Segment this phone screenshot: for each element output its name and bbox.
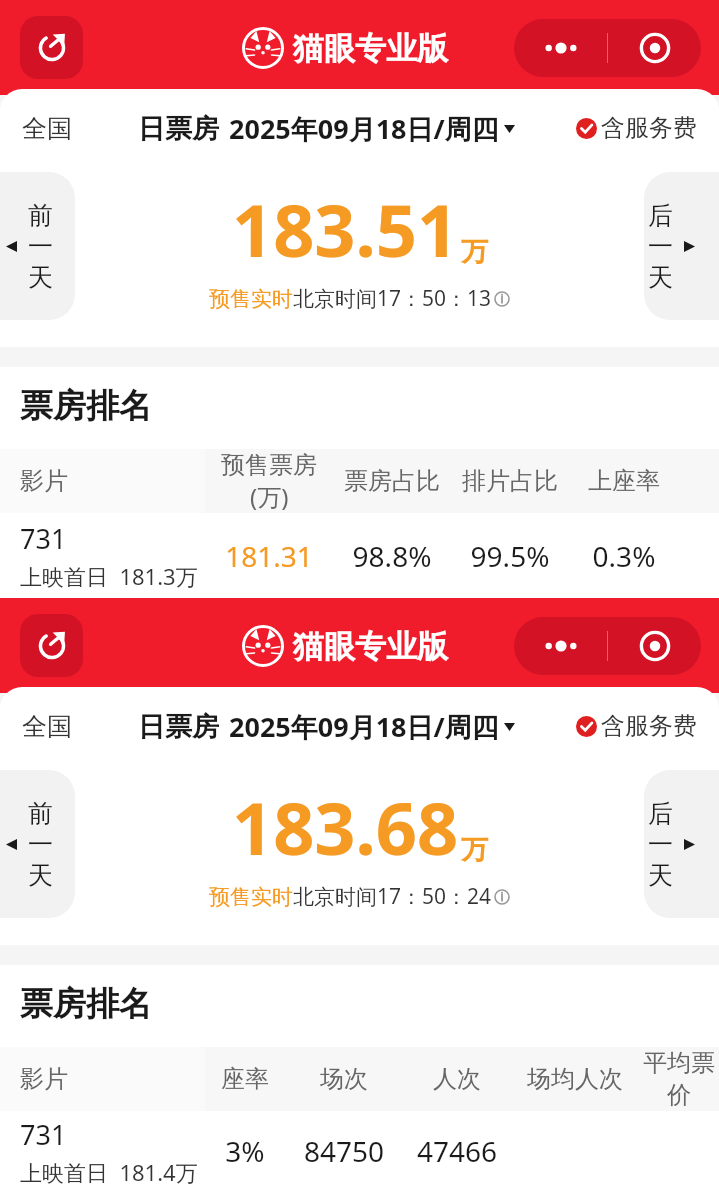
button[interactable]: 日票房 [138, 708, 515, 745]
staticText: 一 [28, 829, 53, 860]
staticText: 场次 [285, 1064, 403, 1094]
button[interactable] [644, 172, 719, 320]
staticText: 天 [648, 262, 673, 293]
staticText: 票房占比 [333, 466, 451, 496]
staticText: 731 [20, 520, 67, 557]
button[interactable]: Share [20, 614, 83, 677]
staticText: 票房排名 [20, 983, 152, 1025]
staticText: 一 [28, 231, 53, 262]
staticText: 84750 [285, 1132, 403, 1170]
staticText: 日票房 [138, 112, 219, 146]
staticText: 天 [28, 860, 53, 891]
staticText: 北京时间17：50：24 [293, 882, 492, 911]
button[interactable]: 731 [0, 513, 719, 598]
staticText: 日票房 [138, 710, 219, 744]
staticText: 47466 [403, 1132, 511, 1170]
staticText: 2025年09月18日/周四 [229, 708, 499, 745]
button[interactable]: 含服务费 [576, 113, 697, 143]
button[interactable]: 日票房 [138, 110, 515, 147]
button[interactable]: More options [514, 617, 607, 675]
button[interactable]: 含服务费 [576, 711, 697, 741]
staticText: 上映首日 181.3万 [20, 561, 198, 591]
staticText: 后 [648, 798, 673, 829]
staticText: 一 [648, 829, 673, 860]
staticText: 预售实时 [209, 884, 293, 910]
staticText: 183.68 [232, 778, 459, 876]
staticText: 3% [205, 1132, 285, 1170]
staticText: 后 [648, 200, 673, 231]
staticText: 181.31 [205, 537, 333, 575]
button[interactable] [0, 770, 75, 918]
staticText: 含服务费 [601, 711, 697, 741]
staticText: 影片 [20, 466, 68, 496]
staticText: 天 [28, 262, 53, 293]
staticText: 上映首日 181.4万 [20, 1157, 198, 1187]
staticText: 含服务费 [601, 113, 697, 143]
staticText: 猫眼专业版 [293, 29, 448, 68]
staticText: 98.8% [333, 537, 451, 575]
staticText: 全国 [22, 711, 72, 742]
staticText: 99.5% [451, 537, 569, 575]
staticText: 前 [28, 798, 53, 829]
button[interactable]: 全国 [22, 711, 72, 742]
staticText: 预售票房 [221, 450, 317, 480]
staticText: 北京时间17：50：13 [293, 284, 492, 313]
staticText: 平均票价 [639, 1048, 719, 1110]
button[interactable] [644, 770, 719, 918]
staticText: 一 [648, 231, 673, 262]
button[interactable]: More options [514, 19, 607, 77]
staticText: 天 [648, 860, 673, 891]
button[interactable]: Close [608, 617, 701, 675]
staticText: 预售实时 [209, 286, 293, 312]
staticText: 全国 [22, 113, 72, 144]
staticText: 万 [461, 833, 488, 867]
staticText: 万 [461, 235, 488, 269]
staticText: 座率 [205, 1064, 285, 1094]
staticText: 183.51 [232, 180, 459, 278]
staticText: 猫眼专业版 [293, 627, 448, 666]
button[interactable]: Share [20, 16, 83, 79]
staticText: 票房排名 [20, 385, 152, 427]
staticText: (万) [250, 480, 289, 513]
button[interactable]: Close [608, 19, 701, 77]
staticText: 影片 [20, 1064, 68, 1094]
staticText: 前 [28, 200, 53, 231]
staticText: 2025年09月18日/周四 [229, 110, 499, 147]
staticText: 0.3% [569, 537, 679, 575]
staticText: 人次 [403, 1064, 511, 1094]
button[interactable]: 全国 [22, 113, 72, 144]
button[interactable]: 731 [0, 1111, 719, 1191]
staticText: 场均人次 [511, 1064, 639, 1094]
button[interactable] [0, 172, 75, 320]
staticText: 731 [20, 1116, 67, 1153]
staticText: 排片占比 [451, 466, 569, 496]
staticText: 上座率 [569, 466, 679, 496]
